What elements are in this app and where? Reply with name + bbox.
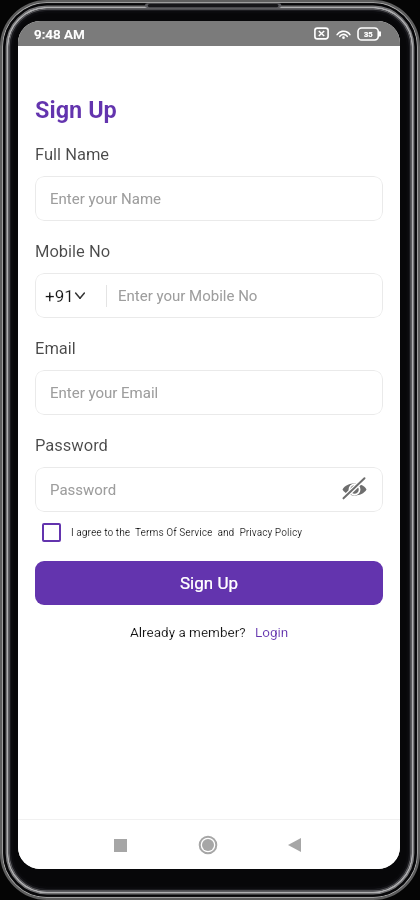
button[interactable]: I agree to the Terms Of Service and Priv… [35, 523, 383, 542]
button[interactable]: Password [35, 467, 383, 512]
staticText: Sign Up [35, 96, 117, 124]
staticText: +91 [45, 286, 74, 306]
staticText: 35 [364, 30, 373, 39]
button[interactable]: Sign Up [35, 561, 383, 605]
button[interactable]: Enter your Name [35, 176, 383, 221]
staticText: Enter your Email [50, 384, 159, 402]
staticText: Full Name [35, 145, 110, 164]
staticText: Email [35, 339, 76, 358]
button[interactable]: Enter your Email [35, 370, 383, 415]
button[interactable]: Enter your Mobile No [107, 273, 383, 318]
staticText: Mobile No [35, 242, 111, 261]
staticText: Password [35, 436, 108, 455]
staticText: Password [50, 481, 117, 499]
button[interactable]: Back [272, 823, 316, 867]
button[interactable]: Login [255, 624, 289, 640]
button[interactable]: Recents [98, 823, 142, 867]
staticText: Sign Up [180, 573, 238, 593]
other: Show password [342, 481, 367, 498]
staticText: Login [255, 624, 289, 640]
staticText: I agree to the Terms Of Service and Priv… [71, 527, 303, 539]
button[interactable]: +91 [35, 273, 106, 318]
staticText: 9:48 AM [34, 26, 85, 42]
staticText: Already a member? [130, 624, 246, 640]
button[interactable]: Home [186, 823, 230, 867]
staticText: Enter your Mobile No [118, 287, 258, 305]
staticText: Enter your Name [50, 190, 162, 208]
